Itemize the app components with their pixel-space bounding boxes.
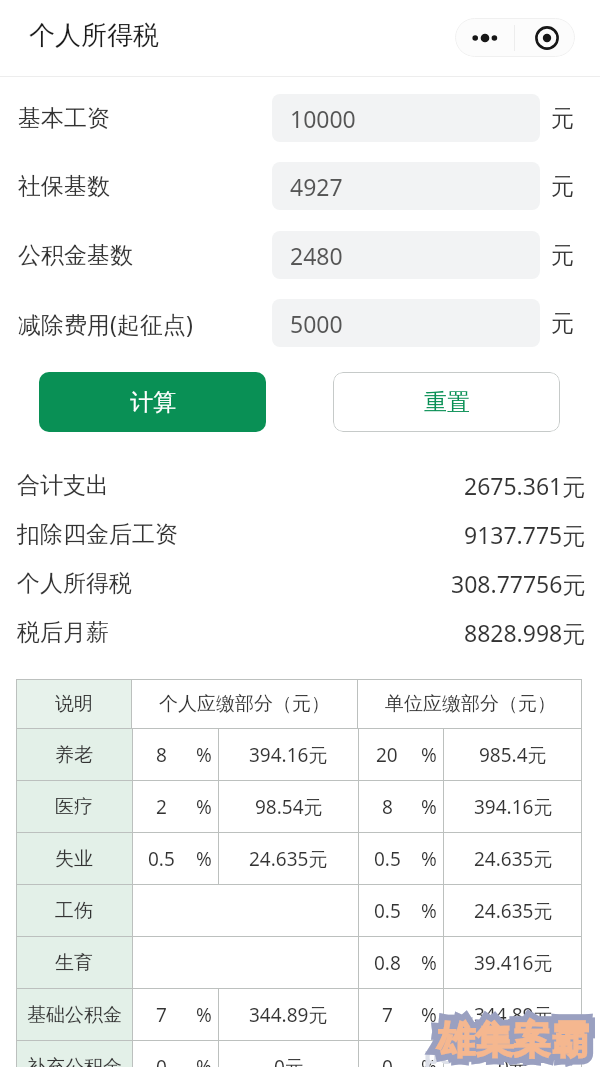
staticText: 2675.361元 — [464, 470, 586, 501]
staticText: 养老 — [55, 743, 93, 767]
button[interactable]: More options — [455, 18, 514, 57]
button[interactable]: 10000 — [272, 94, 540, 142]
button[interactable]: 计算 — [39, 372, 266, 432]
staticText: 7 — [382, 1002, 393, 1028]
staticText: pcc.com — [424, 1038, 522, 1067]
staticText: 0.5 — [374, 846, 401, 872]
staticText: % — [196, 1054, 212, 1067]
staticText: 工伤 — [55, 899, 93, 923]
staticText: 合计支出 — [17, 471, 109, 500]
staticText: 4927 — [290, 171, 343, 202]
staticText: 失业 — [55, 847, 93, 871]
staticText: 元 — [551, 309, 574, 338]
staticText: 雄集案霸 — [437, 1016, 589, 1064]
staticText: 税后月薪 — [17, 618, 109, 647]
button[interactable]: 2480 — [272, 231, 540, 279]
staticText: 元 — [551, 172, 574, 201]
staticText: 单位应缴部分（元） — [385, 692, 556, 716]
staticText: 0元 — [274, 1054, 304, 1067]
staticText: 说明 — [55, 692, 93, 716]
staticText: 344.89元 — [474, 1002, 553, 1028]
staticText: % — [196, 1002, 212, 1028]
staticText: % — [421, 742, 437, 768]
staticText: 10000 — [290, 103, 356, 134]
staticText: 0.5 — [374, 898, 401, 924]
staticText: 5000 — [290, 308, 343, 339]
staticText: 2 — [156, 794, 167, 820]
staticText: % — [421, 794, 437, 820]
staticText: 雄集案霸 — [437, 1016, 589, 1064]
staticText: 24.635元 — [474, 846, 553, 872]
staticText: 9137.775元 — [464, 519, 586, 550]
staticText: 394.16元 — [474, 794, 553, 820]
staticText: % — [196, 794, 212, 820]
staticText: 8 — [156, 742, 167, 768]
staticText: 减除费用(起征点) — [18, 308, 193, 339]
button[interactable]: 5000 — [272, 299, 540, 347]
staticText: 394.16元 — [249, 742, 328, 768]
button[interactable]: 重置 — [333, 372, 560, 432]
staticText: 元 — [551, 241, 574, 270]
staticText: 98.54元 — [255, 794, 323, 820]
staticText: % — [421, 898, 437, 924]
staticText: 0 — [156, 1054, 167, 1067]
staticText: 0元 — [498, 1054, 528, 1067]
button[interactable]: 4927 — [272, 162, 540, 210]
staticText: 社保基数 — [18, 172, 110, 201]
staticText: % — [421, 950, 437, 976]
staticText: 8828.998元 — [464, 617, 586, 648]
staticText: 0 — [382, 1054, 393, 1067]
staticText: 2480 — [290, 240, 343, 271]
staticText: % — [421, 846, 437, 872]
staticText: % — [196, 846, 212, 872]
staticText: 补充公积金 — [27, 1055, 122, 1067]
staticText: 计算 — [130, 388, 176, 417]
staticText: 20 — [376, 742, 398, 768]
staticText: 基础公积金 — [27, 1003, 122, 1027]
staticText: 个人应缴部分（元） — [159, 692, 330, 716]
button[interactable]: Close — [515, 18, 575, 57]
staticText: 重置 — [424, 388, 470, 417]
staticText: % — [196, 742, 212, 768]
staticText: 7 — [156, 1002, 167, 1028]
staticText: 基本工资 — [18, 104, 110, 133]
staticText: 344.89元 — [249, 1002, 328, 1028]
staticText: 元 — [551, 104, 574, 133]
staticText: 308.77756元 — [451, 568, 586, 599]
staticText: 生育 — [55, 951, 93, 975]
staticText: 24.635元 — [249, 846, 328, 872]
staticText: % — [421, 1002, 437, 1028]
staticText: 39.416元 — [474, 950, 553, 976]
staticText: 医疗 — [55, 795, 93, 819]
staticText: 个人所得税 — [29, 19, 159, 52]
staticText: 24.635元 — [474, 898, 553, 924]
staticText: 个人所得税 — [17, 569, 132, 598]
staticText: 公积金基数 — [18, 241, 133, 270]
staticText: % — [421, 1054, 437, 1067]
staticText: 0.5 — [148, 846, 175, 872]
staticText: 0.8 — [374, 950, 401, 976]
staticText: 8 — [382, 794, 393, 820]
staticText: 扣除四金后工资 — [17, 520, 178, 549]
staticText: 985.4元 — [479, 742, 547, 768]
